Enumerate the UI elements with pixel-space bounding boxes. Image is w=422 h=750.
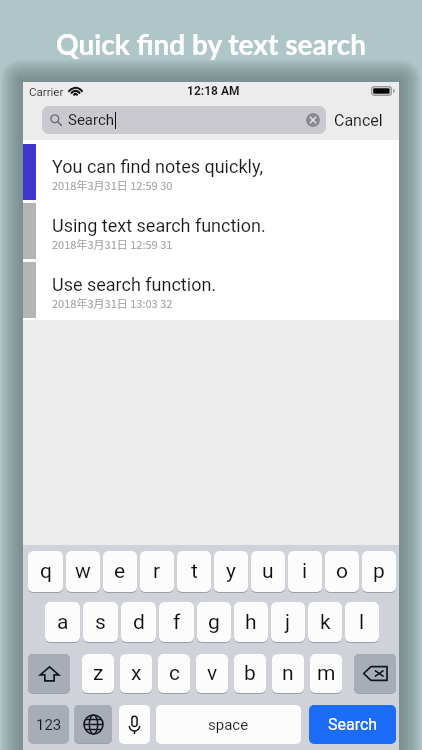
staticText: f xyxy=(173,610,181,635)
button[interactable]: a xyxy=(45,602,80,642)
button[interactable]: You can find notes quickly, xyxy=(23,144,399,200)
button[interactable]: k xyxy=(308,602,342,642)
staticText: You can find notes quickly, xyxy=(52,156,264,177)
button[interactable]: r xyxy=(140,551,174,592)
staticText: e xyxy=(114,559,126,584)
staticText: Cancel xyxy=(334,111,383,130)
staticText: h xyxy=(245,610,257,635)
staticText: Use search function. xyxy=(52,274,217,295)
staticText: l xyxy=(359,610,365,635)
staticText: g xyxy=(208,610,220,635)
button[interactable]: Cancel xyxy=(334,111,383,130)
button[interactable]: f xyxy=(159,602,194,642)
button[interactable]: h xyxy=(234,602,268,642)
staticText: t xyxy=(191,559,198,584)
button[interactable]: p xyxy=(362,551,396,592)
staticText: r xyxy=(153,559,161,584)
staticText: w xyxy=(75,559,91,584)
button[interactable]: b xyxy=(234,654,266,693)
button[interactable]: d xyxy=(121,602,156,642)
staticText: Search xyxy=(68,111,115,129)
button[interactable]: n xyxy=(272,654,304,693)
staticText: o xyxy=(336,559,348,584)
button[interactable]: o xyxy=(325,551,359,592)
staticText: 2018年3月31日 13:03 32 xyxy=(52,295,173,311)
button[interactable]: space xyxy=(156,705,301,744)
button[interactable]: m xyxy=(310,654,342,693)
button[interactable]: Search xyxy=(42,106,326,134)
staticText: s xyxy=(95,610,106,635)
staticText: Search xyxy=(328,715,378,734)
staticText: Carrier xyxy=(29,85,64,98)
button[interactable]: Shift xyxy=(28,654,70,693)
staticText: k xyxy=(320,610,331,635)
button[interactable]: Clear text xyxy=(306,113,320,127)
button[interactable]: t xyxy=(177,551,211,592)
button[interactable]: e xyxy=(103,551,137,592)
staticText: j xyxy=(285,610,291,635)
staticText: b xyxy=(244,661,256,686)
staticText: Quick find by text search xyxy=(56,27,366,61)
button[interactable]: y xyxy=(214,551,248,592)
button[interactable]: Use search function. xyxy=(23,262,399,318)
staticText: z xyxy=(93,661,104,686)
staticText: x xyxy=(131,661,142,686)
staticText: d xyxy=(133,610,145,635)
button[interactable]: Dictation xyxy=(119,705,150,744)
staticText: i xyxy=(302,559,308,584)
button[interactable]: j xyxy=(271,602,305,642)
button[interactable]: z xyxy=(82,654,114,693)
button[interactable]: Using text search function. xyxy=(23,203,399,259)
staticText: 123 xyxy=(36,716,62,734)
button[interactable]: q xyxy=(28,551,63,592)
staticText: q xyxy=(40,559,52,584)
button[interactable]: v xyxy=(196,654,228,693)
button[interactable]: 123 xyxy=(28,705,69,744)
button[interactable]: i xyxy=(288,551,322,592)
button[interactable]: g xyxy=(197,602,231,642)
staticText: c xyxy=(169,661,180,686)
staticText: n xyxy=(282,661,294,686)
staticText: m xyxy=(317,661,336,686)
button[interactable]: u xyxy=(251,551,285,592)
staticText: p xyxy=(373,559,385,584)
staticText: Using text search function. xyxy=(52,215,266,236)
button[interactable]: s xyxy=(83,602,118,642)
staticText: u xyxy=(262,559,274,584)
staticText: 2018年3月31日 12:59 31 xyxy=(52,236,173,252)
button[interactable]: w xyxy=(66,551,100,592)
button[interactable]: x xyxy=(120,654,152,693)
staticText: v xyxy=(207,661,218,686)
staticText: 12:18 AM xyxy=(187,84,240,98)
staticText: a xyxy=(57,610,69,635)
button[interactable]: Next keyboard xyxy=(74,705,112,743)
button[interactable]: Backspace xyxy=(354,654,396,693)
staticText: space xyxy=(208,716,249,734)
button[interactable]: l xyxy=(345,602,379,642)
button[interactable]: c xyxy=(158,654,190,693)
button[interactable]: Search xyxy=(309,705,396,744)
staticText: 2018年3月31日 12:59 30 xyxy=(52,177,173,193)
staticText: y xyxy=(226,559,236,584)
